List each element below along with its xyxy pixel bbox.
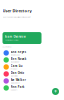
staticText: Data Science	[11, 82, 20, 84]
staticText: +	[54, 88, 57, 95]
button[interactable]: Cara Liu	[1, 63, 62, 70]
staticText: ALL PEOPLE	[2, 46, 11, 48]
staticText: 128 members online	[4, 39, 18, 41]
staticText: Dan Ortiz	[11, 71, 24, 75]
button[interactable]: Dan Ortiz	[1, 70, 62, 77]
button[interactable]: Add person	[52, 88, 59, 95]
staticText: Design Lead	[11, 54, 20, 56]
staticText: User Directory	[2, 8, 31, 13]
staticText: Search and browse all the company staff	[2, 16, 30, 18]
staticText: Finn Park	[11, 85, 25, 89]
staticText: Support	[11, 89, 17, 91]
button[interactable]: Ben Novak	[1, 56, 62, 63]
button[interactable]: Ana Reyes	[1, 49, 62, 56]
staticText: Marketing	[11, 75, 18, 77]
staticText: Product	[11, 68, 17, 70]
staticText: Ben Novak	[11, 57, 27, 61]
staticText: Cara Liu	[11, 64, 23, 68]
button[interactable]: Finn Park	[1, 84, 62, 91]
staticText: Team Overview	[4, 35, 25, 38]
staticText: iOS Engineer	[11, 61, 20, 63]
staticText: Ana Reyes	[11, 50, 26, 54]
staticText: Eve Walker	[11, 78, 26, 82]
button[interactable]: Eve Walker	[1, 77, 62, 84]
